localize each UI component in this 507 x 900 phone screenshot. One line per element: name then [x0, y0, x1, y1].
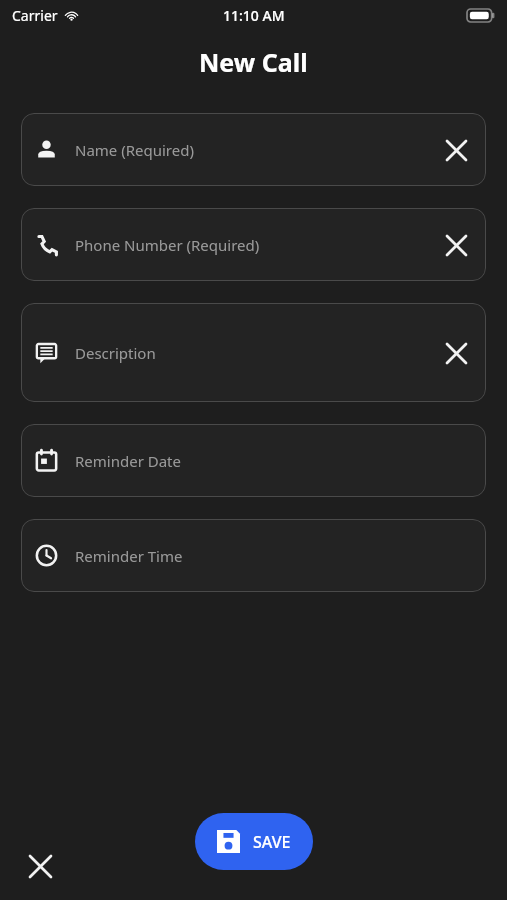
button[interactable]: Close: [18, 844, 62, 888]
button[interactable]: Reminder date: [21, 424, 486, 497]
staticText: 11:10 AM: [223, 6, 285, 25]
staticText: Phone Number (Required): [75, 235, 260, 255]
button[interactable]: Phone number: [21, 208, 486, 281]
staticText: Reminder Date: [75, 451, 181, 471]
staticText: Carrier: [12, 6, 58, 25]
button[interactable]: Name: [21, 113, 486, 186]
button[interactable]: Clear: [436, 225, 476, 265]
button[interactable]: Clear: [436, 333, 476, 373]
staticText: SAVE: [253, 831, 291, 853]
staticText: New Call: [199, 45, 308, 79]
button[interactable]: Description: [21, 303, 486, 402]
staticText: Name (Required): [75, 140, 194, 160]
button[interactable]: Reminder time: [21, 519, 486, 592]
button[interactable]: SAVE: [195, 813, 313, 870]
button[interactable]: Clear: [436, 130, 476, 170]
staticText: Description: [75, 343, 156, 363]
staticText: Reminder Time: [75, 546, 183, 566]
